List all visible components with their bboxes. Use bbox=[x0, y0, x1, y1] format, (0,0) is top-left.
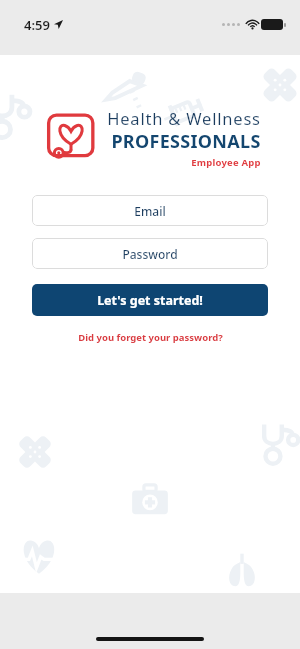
staticText: PROFESSIONALS bbox=[111, 129, 261, 154]
button[interactable]: Password bbox=[32, 238, 268, 269]
staticText: Employee App bbox=[191, 156, 261, 169]
button[interactable]: Email bbox=[32, 195, 268, 226]
button[interactable]: Did you forget your password? bbox=[32, 328, 268, 346]
staticText: Password bbox=[122, 246, 178, 262]
other: Home indicator bbox=[96, 637, 204, 641]
button[interactable]: Let's get started! bbox=[32, 284, 268, 316]
staticText: Email bbox=[134, 203, 166, 219]
staticText: Health & Wellness bbox=[107, 107, 261, 129]
staticText: Let's get started! bbox=[97, 292, 203, 309]
staticText: Did you forget your password? bbox=[78, 331, 223, 344]
staticText: 4:59 bbox=[24, 16, 50, 34]
